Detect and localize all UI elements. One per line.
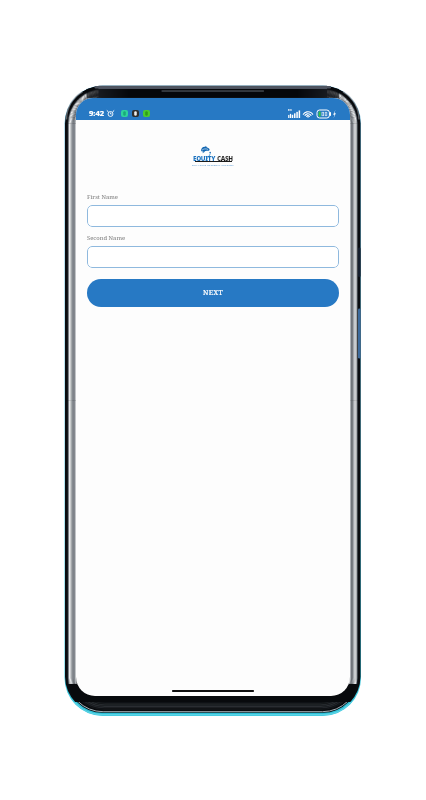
button[interactable]: NEXT (87, 279, 339, 307)
staticText: Second Name (87, 234, 126, 242)
staticText: 9:42 (89, 108, 105, 118)
button[interactable]: Home (172, 690, 254, 692)
staticText: EQUITY (193, 154, 215, 163)
button[interactable] (87, 246, 339, 268)
staticText: CASH (217, 154, 233, 163)
staticText: BUY LEASE REFERRAL SUPPORT (192, 163, 234, 166)
staticText: NEXT (203, 288, 224, 298)
button[interactable] (87, 205, 339, 227)
staticText: First Name (87, 193, 118, 201)
